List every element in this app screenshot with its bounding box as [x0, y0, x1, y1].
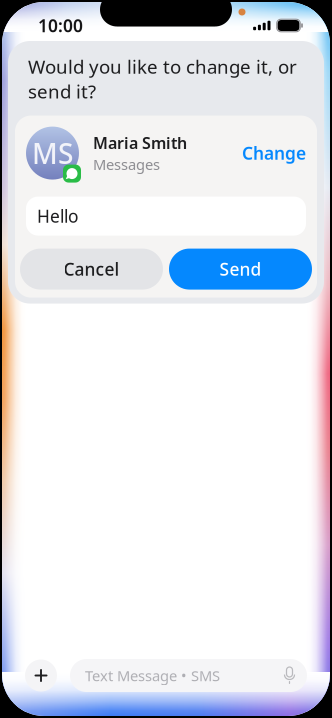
staticText: MS [32, 134, 73, 172]
staticText: Messages [93, 154, 160, 174]
staticText: Text Message • SMS [85, 666, 220, 685]
button[interactable]: Send [169, 249, 312, 290]
button[interactable]: Add attachment [25, 659, 57, 691]
staticText: Change [242, 142, 306, 165]
staticText: Send [219, 258, 261, 281]
button[interactable]: Change [236, 134, 312, 173]
button[interactable]: Dictate [281, 666, 298, 684]
staticText: Hello [37, 205, 78, 228]
staticText: Maria Smith [93, 132, 187, 153]
button[interactable]: Cancel [20, 249, 163, 290]
staticText: Cancel [63, 258, 119, 281]
staticText: Would you like to change it, or send it? [28, 54, 297, 104]
staticText: 10:00 [38, 14, 83, 37]
